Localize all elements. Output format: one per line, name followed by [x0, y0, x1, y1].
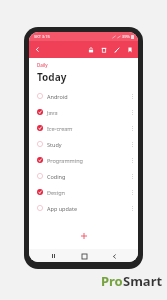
button[interactable]: Bookmark: [124, 44, 135, 55]
staticText: SKT 3:15: [34, 34, 50, 39]
staticText: Study: [47, 141, 62, 148]
button[interactable]: Back: [108, 250, 120, 262]
button[interactable]: App update: [29, 200, 138, 216]
button[interactable]: Study: [29, 136, 138, 152]
staticText: App update: [47, 205, 78, 212]
staticText: Android: [47, 93, 68, 100]
staticText: Daily: [37, 62, 48, 68]
staticText: Programming: [47, 157, 83, 164]
button[interactable]: Add task: [77, 229, 91, 243]
button[interactable]: Coding: [29, 168, 138, 184]
button[interactable]: Recents: [47, 250, 59, 262]
staticText: Pro: [101, 272, 123, 290]
staticText: 39%: [122, 34, 130, 39]
button[interactable]: Lock: [85, 44, 96, 55]
button[interactable]: Home: [78, 250, 90, 262]
button[interactable]: Delete: [98, 44, 109, 55]
button[interactable]: Android: [29, 88, 138, 104]
button[interactable]: Programming: [29, 152, 138, 168]
staticText: Smart: [123, 272, 163, 290]
staticText: Coding: [47, 173, 66, 180]
staticText: Java: [47, 109, 58, 116]
button[interactable]: Back: [32, 44, 43, 55]
button[interactable]: Edit: [111, 44, 122, 55]
button[interactable]: Design: [29, 184, 138, 200]
staticText: Ice-cream: [47, 125, 73, 132]
button[interactable]: Ice-cream: [29, 120, 138, 136]
button[interactable]: Java: [29, 104, 138, 120]
staticText: Today: [37, 70, 67, 84]
staticText: Design: [47, 189, 65, 196]
